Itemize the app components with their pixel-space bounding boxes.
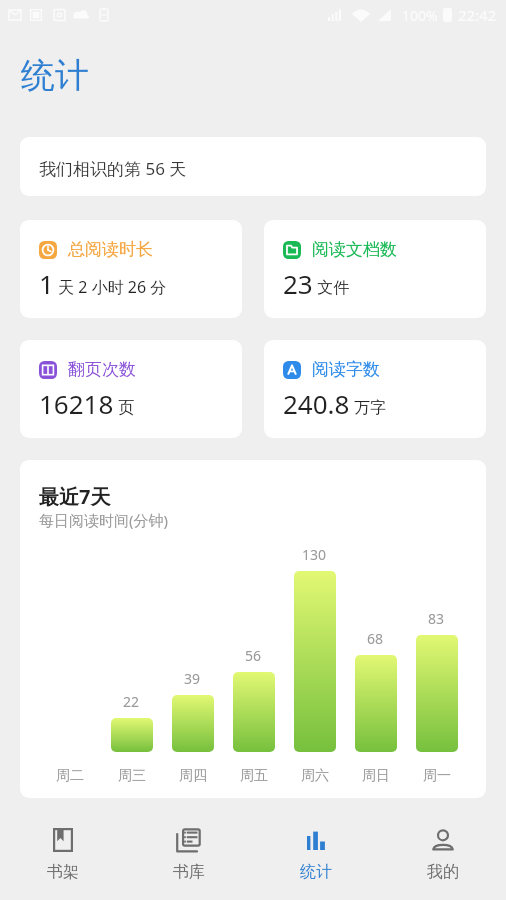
button[interactable]: 书库 bbox=[126, 827, 252, 882]
staticText: 周一 bbox=[423, 767, 451, 785]
staticText: 我们相识的第 56 天 bbox=[39, 157, 187, 180]
staticText: 周三 bbox=[118, 767, 146, 785]
staticText: 书架 bbox=[47, 862, 79, 882]
staticText: 周五 bbox=[240, 767, 268, 785]
staticText: 1 bbox=[39, 266, 54, 301]
button[interactable]: 我们相识的第 56 天 bbox=[20, 137, 486, 196]
staticText: 我的 bbox=[427, 862, 459, 882]
button[interactable]: 阅读文档数 bbox=[264, 220, 486, 318]
button[interactable]: 阅读字数 bbox=[264, 340, 486, 438]
staticText: 文件 bbox=[313, 276, 350, 298]
staticText: 最近7天 bbox=[39, 483, 111, 510]
staticText: 39 bbox=[184, 669, 201, 688]
staticText: 130 bbox=[302, 545, 327, 564]
staticText: 翻页次数 bbox=[68, 359, 136, 380]
staticText: 22:42 bbox=[458, 5, 497, 25]
staticText: 周二 bbox=[56, 767, 84, 785]
staticText: 100% bbox=[402, 6, 438, 25]
staticText: 天 2 小时 26 分 bbox=[54, 276, 167, 298]
staticText: 阅读文档数 bbox=[312, 239, 397, 260]
staticText: 统计 bbox=[21, 54, 89, 97]
staticText: 万字 bbox=[350, 396, 387, 418]
staticText: 83 bbox=[428, 609, 445, 628]
button[interactable]: 翻页次数 bbox=[20, 340, 242, 438]
staticText: 56 bbox=[245, 646, 262, 665]
staticText: 68 bbox=[367, 629, 384, 648]
staticText: 每日阅读时间(分钟) bbox=[39, 510, 169, 530]
staticText: 阅读字数 bbox=[312, 359, 380, 380]
staticText: 16218 bbox=[39, 386, 114, 421]
staticText: 页 bbox=[114, 396, 135, 418]
staticText: 统计 bbox=[300, 862, 332, 882]
button[interactable]: 总阅读时长 bbox=[20, 220, 242, 318]
staticText: 总阅读时长 bbox=[68, 239, 153, 260]
button[interactable]: 统计 bbox=[252, 827, 379, 882]
staticText: 240.8 bbox=[283, 386, 350, 421]
staticText: 周六 bbox=[301, 767, 329, 785]
button[interactable]: 我的 bbox=[379, 827, 506, 882]
staticText: 周四 bbox=[179, 767, 207, 785]
staticText: 书库 bbox=[173, 862, 205, 882]
staticText: 22 bbox=[123, 692, 140, 711]
staticText: 23 bbox=[283, 266, 313, 301]
button[interactable]: 书架 bbox=[0, 827, 126, 882]
staticText: 周日 bbox=[362, 767, 390, 785]
